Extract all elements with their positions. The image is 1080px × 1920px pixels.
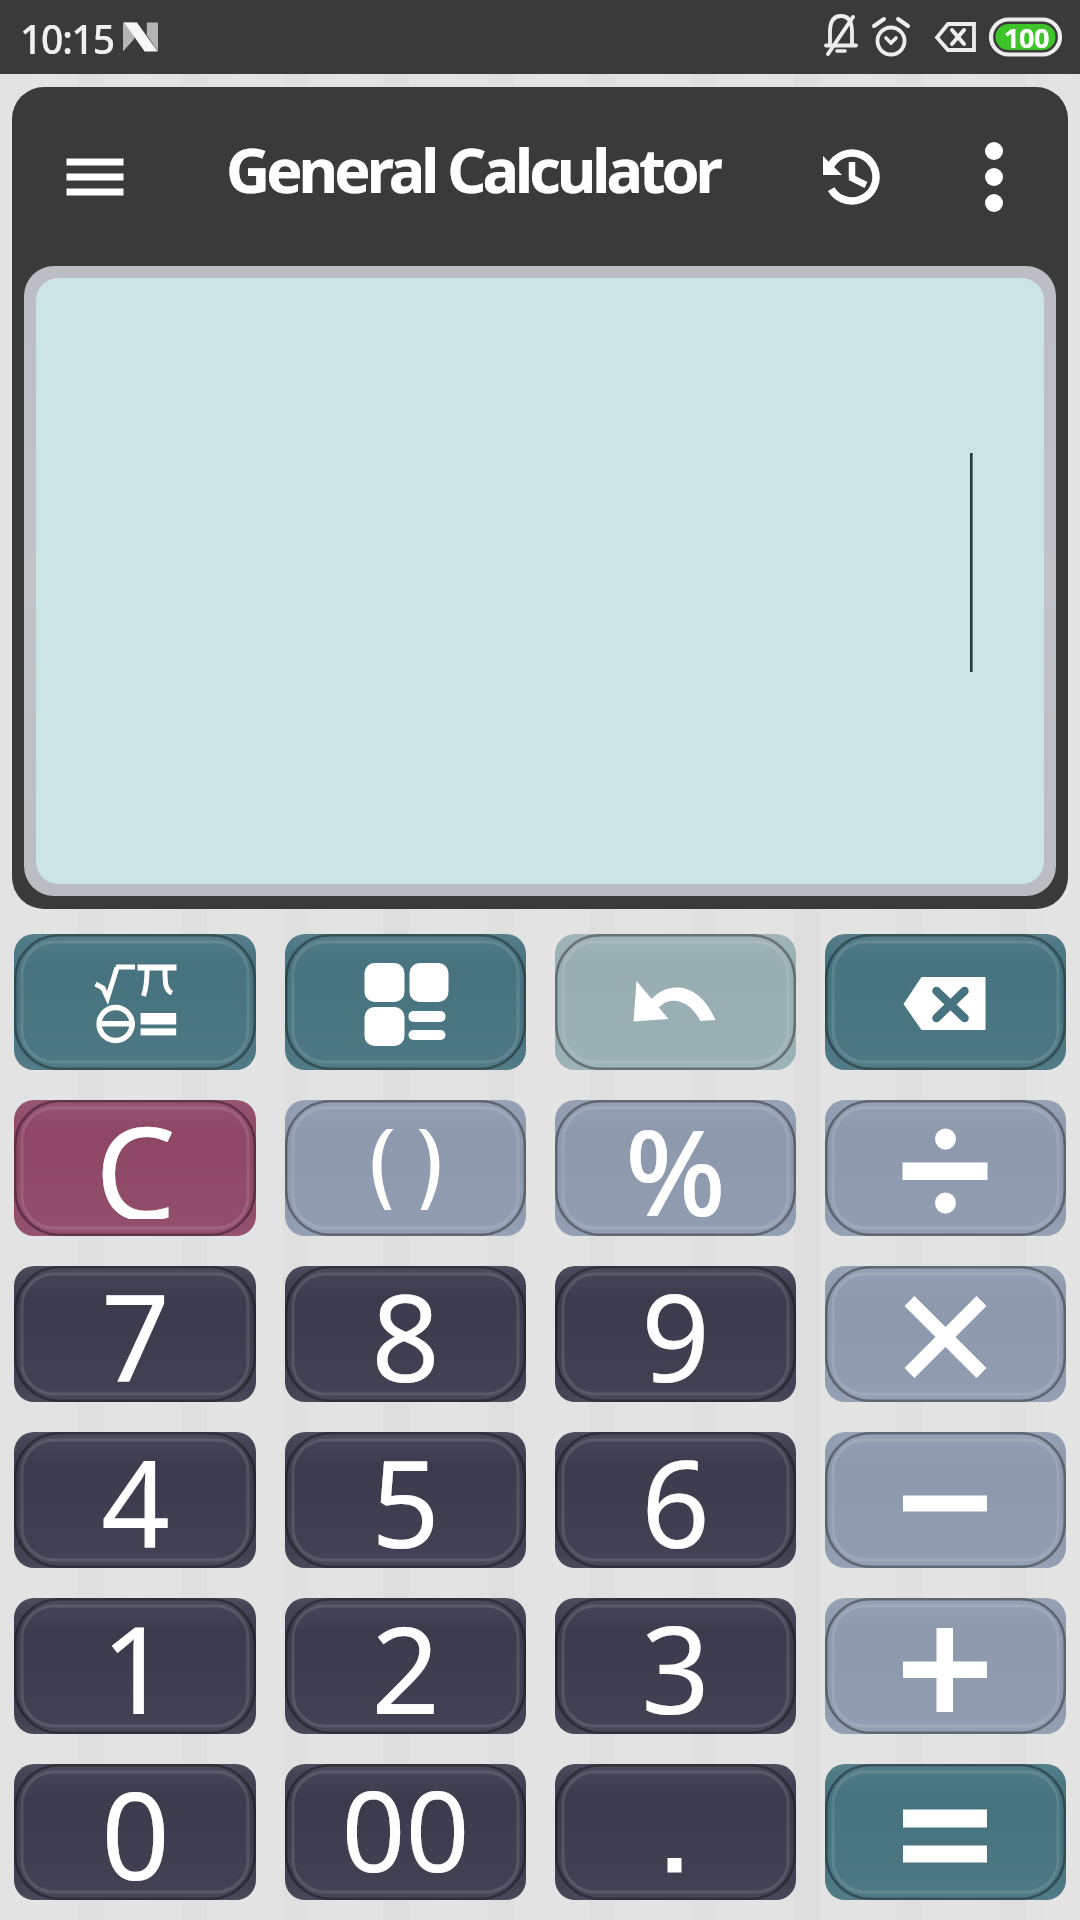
- staticText: 1: [101, 1598, 170, 1722]
- button[interactable]: 5: [285, 1432, 526, 1568]
- staticText: 3: [641, 1598, 710, 1722]
- button[interactable]: 4: [14, 1432, 256, 1568]
- button[interactable]: Plus: [825, 1598, 1066, 1734]
- staticText: 6: [641, 1432, 710, 1556]
- button[interactable]: 0: [14, 1764, 256, 1900]
- button[interactable]: Scientific functions: [14, 934, 256, 1070]
- button[interactable]: .: [555, 1764, 796, 1900]
- button[interactable]: 1: [14, 1598, 256, 1734]
- button[interactable]: History: [812, 137, 892, 217]
- button[interactable]: %: [555, 1100, 796, 1236]
- staticText: 4: [101, 1432, 170, 1556]
- staticText: 7: [101, 1266, 170, 1390]
- staticText: 10:15: [20, 12, 114, 65]
- button[interactable]: C: [14, 1100, 256, 1236]
- staticText: 00: [341, 1764, 470, 1888]
- staticText: 5: [371, 1432, 440, 1556]
- button[interactable]: 9: [555, 1266, 796, 1402]
- button[interactable]: Unit converters: [285, 934, 526, 1070]
- staticText: 9: [641, 1266, 710, 1390]
- staticText: C: [95, 1100, 176, 1219]
- button[interactable]: Equals: [825, 1764, 1066, 1900]
- button[interactable]: Parentheses: [285, 1100, 526, 1236]
- button[interactable]: Divide: [825, 1100, 1066, 1236]
- button[interactable]: Multiply: [825, 1266, 1066, 1402]
- button[interactable]: 00: [285, 1764, 526, 1900]
- staticText: 2: [371, 1598, 440, 1722]
- button[interactable]: Minus: [825, 1432, 1066, 1568]
- staticText: %: [625, 1100, 726, 1226]
- button[interactable]: 7: [14, 1266, 256, 1402]
- staticText: General Calculator: [226, 128, 719, 211]
- button[interactable]: 2: [285, 1598, 526, 1734]
- button[interactable]: Undo: [555, 934, 796, 1070]
- button[interactable]: 6: [555, 1432, 796, 1568]
- button[interactable]: 3: [555, 1598, 796, 1734]
- button[interactable]: Open navigation menu: [61, 143, 129, 211]
- staticText: 100: [1004, 19, 1049, 56]
- staticText: 8: [371, 1266, 440, 1390]
- button[interactable]: 8: [285, 1266, 526, 1402]
- button[interactable]: More options: [959, 142, 1029, 212]
- staticText: 0: [101, 1764, 170, 1888]
- button[interactable]: Backspace: [825, 934, 1066, 1070]
